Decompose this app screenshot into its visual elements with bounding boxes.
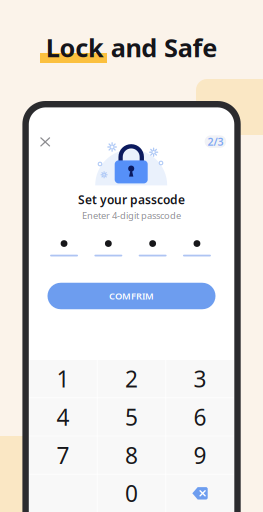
button[interactable]: 6 [166,398,234,436]
button[interactable]: 3 [166,360,234,397]
staticText: 8 [125,440,138,470]
button[interactable]: 5 [98,398,165,436]
button[interactable]: 9 [166,436,234,474]
staticText: Set your passcode [78,191,185,207]
button[interactable]: 0 [98,475,165,512]
staticText: 9 [193,440,206,470]
staticText: 3 [193,364,206,394]
staticText: Lock and Safe [46,31,217,64]
staticText: 4 [56,402,69,432]
staticText: COMFRIM [109,290,154,302]
staticText: 5 [125,402,138,432]
staticText: 6 [193,402,206,432]
staticText: 1 [56,364,69,394]
button[interactable]: 1 [29,360,97,397]
staticText: Eneter 4-digit passcode [82,209,181,222]
staticText: 2 [125,364,138,394]
button[interactable]: 2 [98,360,165,397]
staticText: 2/3 [207,134,223,149]
button[interactable]: Close [31,128,59,156]
staticText: 0 [125,478,138,508]
button[interactable]: 7 [29,436,97,474]
button[interactable]: 4 [29,398,97,436]
button[interactable]: 8 [98,436,165,474]
staticText: 7 [56,440,69,470]
button[interactable]: Delete [166,475,234,512]
button[interactable]: COMFRIM [47,283,215,309]
